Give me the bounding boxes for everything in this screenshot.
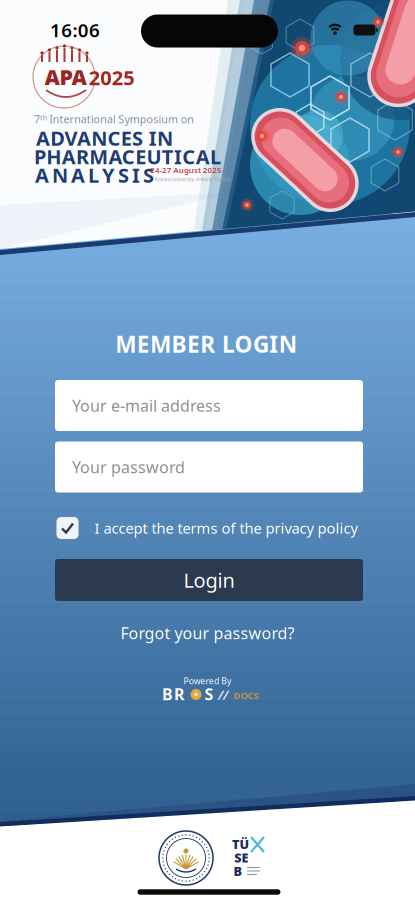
- staticText: Forgot your password?: [120, 622, 294, 644]
- staticText: DOCS: [233, 689, 258, 702]
- staticText: TÜ: [229, 832, 252, 855]
- button[interactable]: Your password: [55, 441, 363, 492]
- staticText: Your password: [72, 456, 185, 478]
- staticText: BR: [162, 683, 184, 705]
- staticText: S: [204, 683, 213, 705]
- staticText: APA: [44, 63, 86, 91]
- staticText: Login: [183, 567, 234, 593]
- staticText: A N A L Y S I S: [35, 162, 154, 188]
- staticText: 16:06: [50, 18, 100, 42]
- staticText: 24-27 August 2025: [125, 161, 246, 179]
- button[interactable]: Login: [55, 559, 363, 601]
- staticText: I accept the terms of the privacy policy: [94, 518, 357, 538]
- staticText: ADVANCES IN: [36, 125, 173, 151]
- staticText: //: [218, 686, 228, 703]
- staticText: Your e-mail address: [72, 395, 221, 416]
- button[interactable]: I accept the terms of the privacy policy: [56, 517, 357, 539]
- staticText: B: [232, 859, 244, 882]
- staticText: SE: [231, 846, 251, 869]
- staticText: PHARMACEUTICAL: [34, 143, 221, 170]
- button[interactable]: Your e-mail address: [55, 380, 363, 431]
- button[interactable]: Forgot your password?: [120, 622, 294, 644]
- staticText: Ankara University, Ankara, Türkiye: [87, 171, 298, 188]
- staticText: 2025: [89, 64, 134, 91]
- staticText: Powered By: [170, 672, 244, 690]
- staticText: MEMBER LOGIN: [115, 329, 297, 359]
- staticText: 7ᵗʰ International Symposium on: [0, 108, 233, 130]
